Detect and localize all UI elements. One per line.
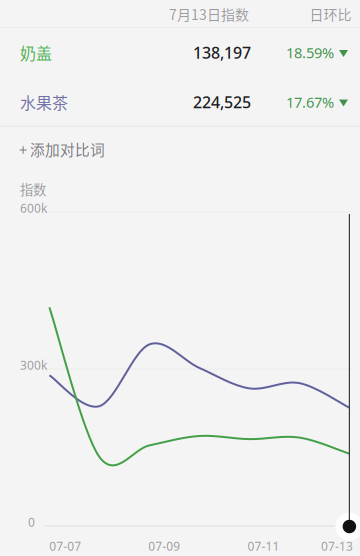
staticText: 奶盖	[20, 41, 52, 64]
button[interactable]: 奶盖	[0, 27, 360, 77]
staticText: 日环比	[309, 4, 351, 24]
staticText: 300k	[20, 357, 47, 373]
button[interactable]: + 添加对比词	[0, 128, 360, 170]
staticText: 07-13	[321, 538, 353, 554]
staticText: 7月13日指数	[169, 4, 249, 24]
staticText: 138,197	[193, 42, 251, 63]
button[interactable]: 水果茶	[0, 77, 360, 127]
staticText: 0	[28, 514, 35, 530]
staticText: 17.67%	[286, 92, 334, 112]
staticText: 224,525	[193, 91, 251, 113]
staticText: 600k	[20, 200, 47, 216]
staticText: 指数	[20, 179, 46, 199]
staticText: 07-07	[49, 538, 81, 554]
staticText: 水果茶	[20, 90, 68, 114]
staticText: 07-09	[148, 538, 180, 554]
staticText: 18.59%	[286, 43, 334, 62]
staticText: + 添加对比词	[19, 138, 105, 160]
staticText: 07-11	[247, 538, 279, 554]
